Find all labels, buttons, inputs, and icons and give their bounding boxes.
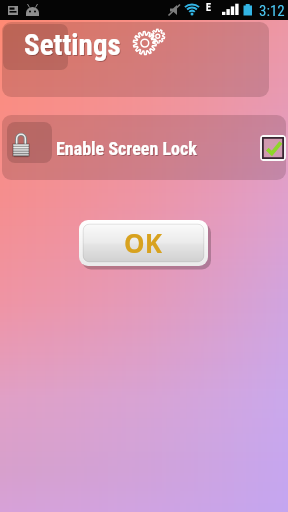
button[interactable]: OK — [79, 220, 211, 270]
staticText: Enable Screen Lock — [57, 139, 198, 160]
button[interactable]: Enable Screen Lock — [2, 115, 286, 180]
staticText: Enable Screen Lock — [56, 138, 197, 159]
staticText: 3:12 — [259, 2, 285, 20]
staticText: E — [206, 2, 211, 14]
staticText: Settings — [24, 28, 121, 62]
staticText: Settings — [25, 29, 122, 63]
button[interactable]: Enable Screen Lock checkbox — [260, 135, 286, 161]
staticText: OK — [124, 225, 162, 260]
